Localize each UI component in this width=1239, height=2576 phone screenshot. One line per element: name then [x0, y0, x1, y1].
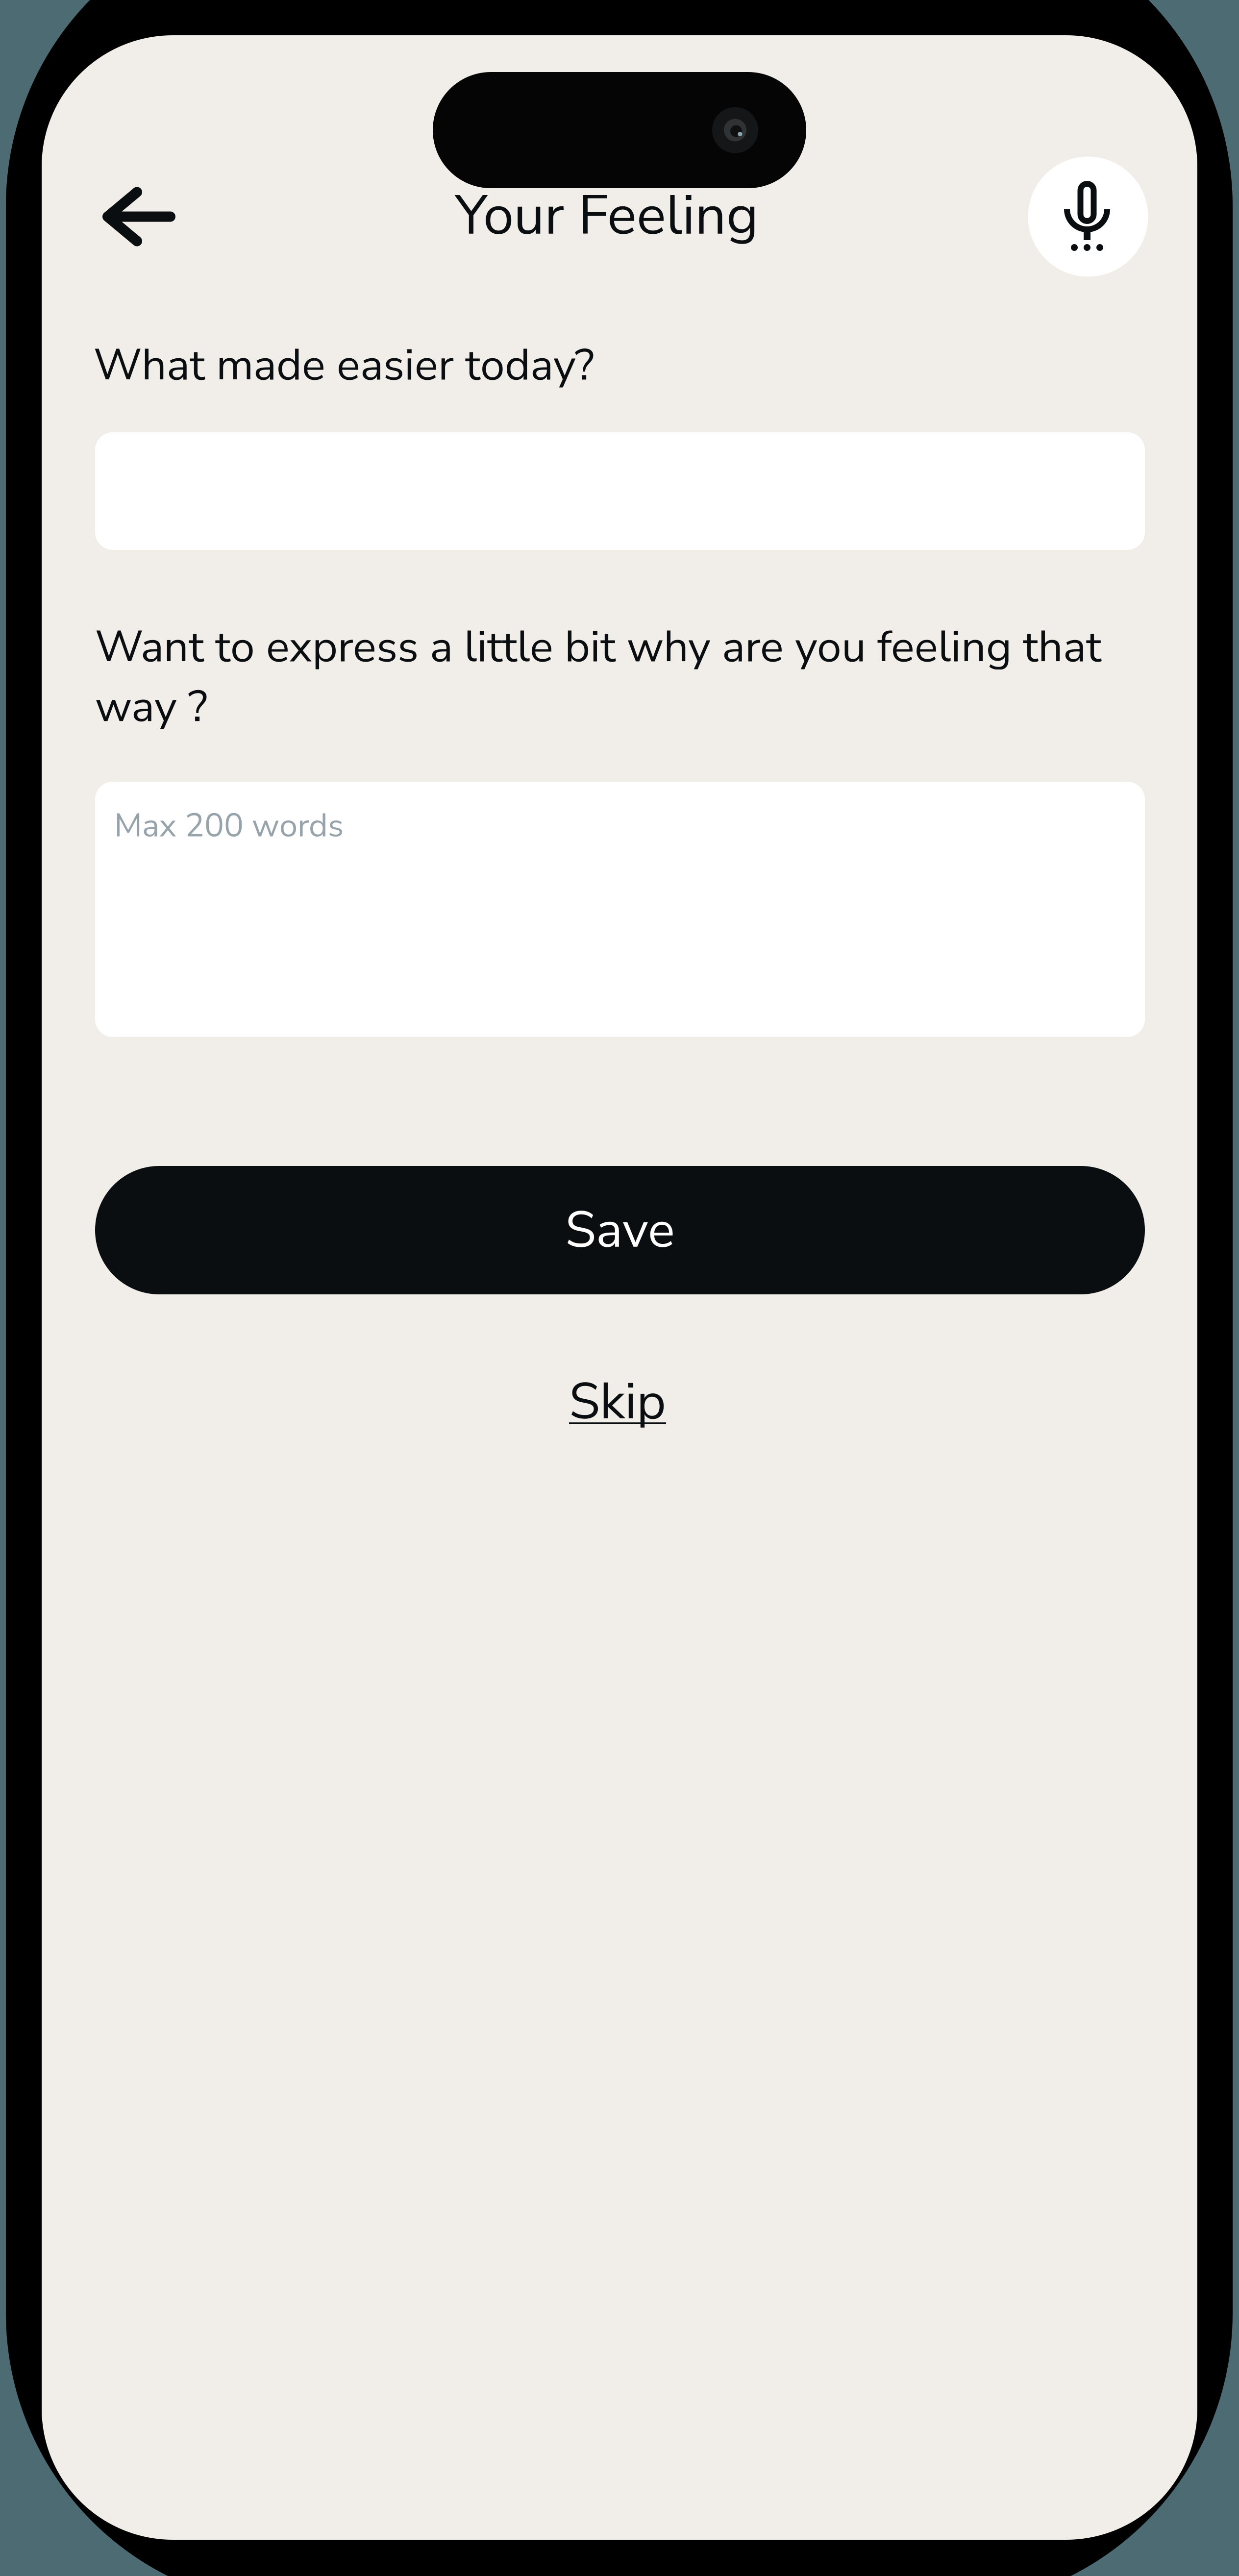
button[interactable]: Back	[83, 165, 195, 268]
staticText: Skip	[569, 1367, 666, 1436]
staticText: Want to express a little bit why are you…	[95, 617, 1101, 737]
staticText: Max 200 words	[114, 803, 344, 848]
staticText: Your Feeling	[455, 178, 759, 253]
button[interactable]: Voice input	[1028, 157, 1148, 277]
staticText: What made easier today?	[94, 335, 595, 395]
button[interactable]: Skip	[515, 1365, 720, 1438]
staticText: Save	[565, 1196, 675, 1264]
button[interactable]: Save	[95, 1166, 1145, 1294]
